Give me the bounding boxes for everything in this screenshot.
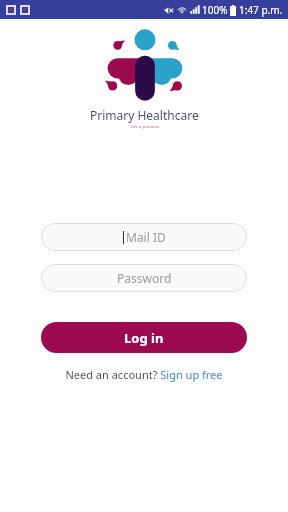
staticText: 100% xyxy=(202,3,228,17)
button[interactable]: Log in xyxy=(41,322,247,353)
button[interactable]: Password xyxy=(41,264,247,292)
button[interactable]: Need an account? Sign up free xyxy=(59,365,229,384)
staticText: Log in xyxy=(124,329,164,347)
button[interactable]: Mail ID xyxy=(41,223,247,251)
staticText: Mail ID xyxy=(126,229,166,245)
staticText: 1:47 p.m. xyxy=(239,3,283,17)
staticText: Password xyxy=(117,270,172,286)
staticText: Primary Healthcare xyxy=(90,107,199,123)
staticText: Life is precious xyxy=(131,124,159,129)
staticText: Need an account? Sign up free xyxy=(65,367,223,382)
